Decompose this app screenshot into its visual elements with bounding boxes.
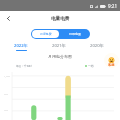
staticText: 600 [4, 92, 9, 95]
button[interactable]: 日用电量 [60, 29, 90, 39]
staticText: 2021年 [52, 43, 66, 49]
staticText: 客服 [108, 63, 115, 67]
staticText: 电量电费 [51, 16, 70, 22]
button[interactable]: 2021年 [40, 43, 78, 50]
staticText: 一档 [88, 64, 94, 68]
staticText: 单位：千瓦时 [16, 64, 32, 67]
button[interactable]: 月度电费 [32, 30, 59, 38]
staticText: 日用电量 [69, 32, 81, 36]
staticText: 月度电费 [40, 32, 52, 36]
staticText: 2022年 [14, 43, 28, 49]
staticText: 9:21 [108, 3, 118, 9]
button[interactable]: 2020年 [78, 43, 116, 50]
button[interactable]: 2022年 [2, 43, 40, 51]
staticText: 1,000 [4, 74, 11, 77]
staticText: 2020年 [90, 43, 104, 49]
button[interactable]: Customer service [104, 53, 119, 68]
staticText: 200 [4, 108, 9, 111]
staticText: 月用电分布图 [48, 54, 72, 59]
button[interactable]: Back [0, 11, 16, 24]
